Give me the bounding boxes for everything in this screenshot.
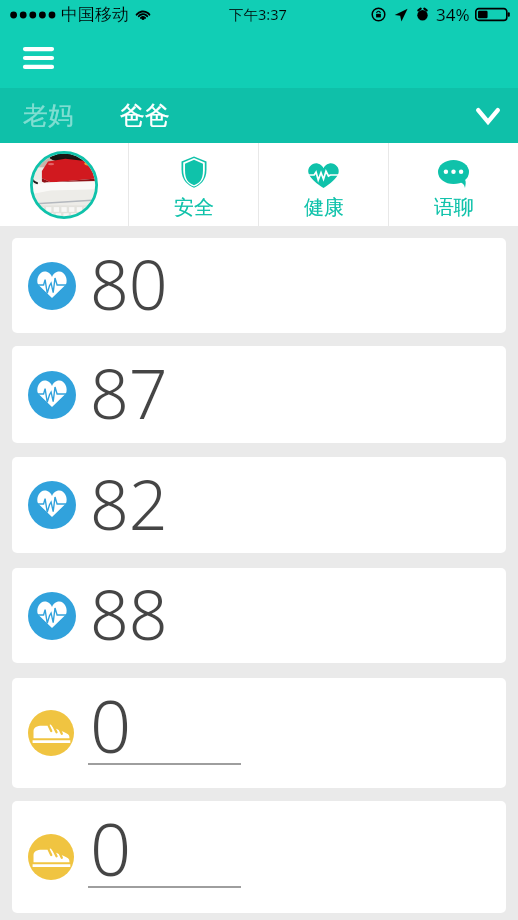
button[interactable]: 88 <box>12 568 506 663</box>
staticText: 下午3:37 <box>229 4 287 24</box>
staticText: 语聊 <box>434 195 474 220</box>
staticText: 老妈 <box>23 100 73 131</box>
staticText: 34% <box>436 3 470 26</box>
staticText: 80 <box>90 238 168 330</box>
button[interactable]: Open navigation menu <box>12 32 64 84</box>
staticText: 0 <box>90 678 132 774</box>
staticText: 安全 <box>174 195 214 220</box>
button[interactable]: Switch family member <box>465 93 511 139</box>
button[interactable]: 80 <box>12 238 506 333</box>
staticText: 中国移动 <box>61 4 129 25</box>
button[interactable]: 健康 <box>259 143 388 226</box>
button[interactable]: 安全 <box>129 143 258 226</box>
staticText: 健康 <box>304 195 344 220</box>
button[interactable]: 0 <box>12 678 506 788</box>
staticText: 0 <box>90 801 132 897</box>
button[interactable]: 0 <box>12 801 506 913</box>
staticText: 82 <box>90 457 168 550</box>
staticText: 87 <box>90 346 168 439</box>
button[interactable]: Profile photo <box>0 143 128 226</box>
staticText: 88 <box>90 568 168 660</box>
button[interactable]: 语聊 <box>389 143 518 226</box>
button[interactable]: 87 <box>12 346 506 443</box>
button[interactable]: 老妈 <box>0 90 85 141</box>
staticText: 爸爸 <box>120 100 170 131</box>
button[interactable]: 爸爸 <box>85 90 186 141</box>
button[interactable]: 82 <box>12 457 506 553</box>
